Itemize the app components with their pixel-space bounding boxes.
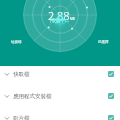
button[interactable]: 應用程式安裝檔 — [0, 85, 120, 107]
staticText: 影片檔 — [13, 115, 30, 120]
staticText: 2.88 — [48, 8, 70, 23]
staticText: MB — [70, 17, 75, 21]
button[interactable]: Selected — [108, 115, 114, 120]
staticText: 垃圾檔 — [11, 40, 22, 44]
staticText: 快取檔 — [13, 71, 30, 78]
button[interactable]: 影片檔 — [0, 107, 120, 120]
button[interactable]: 快取檔 — [0, 63, 120, 85]
staticText: 應用程式安裝檔 — [13, 93, 52, 100]
staticText: 掃描中... — [50, 17, 70, 24]
staticText: 已選擇 — [98, 40, 109, 44]
button[interactable]: Selected — [108, 71, 114, 77]
button[interactable]: Selected — [108, 93, 114, 99]
